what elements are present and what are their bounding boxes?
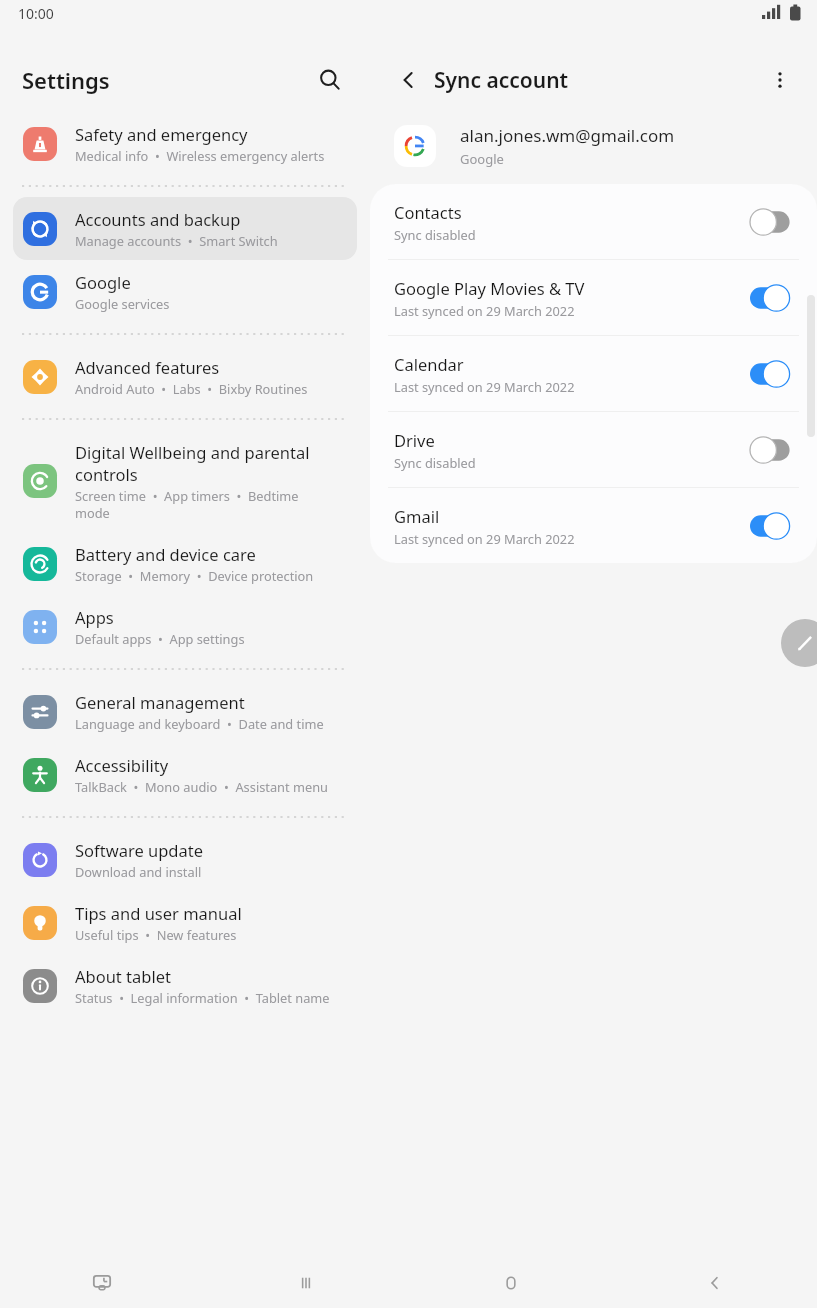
staticText: Status • Legal information • Tablet name	[75, 989, 356, 1006]
staticText: Last synced on 29 March 2022	[394, 378, 575, 395]
button[interactable]: More options	[761, 61, 799, 99]
button[interactable]: General management	[0, 680, 370, 743]
button[interactable]: Recents	[270, 1258, 342, 1308]
staticText: Language and keyboard • Date and time	[75, 715, 356, 732]
staticText: Software update	[75, 839, 203, 861]
staticText: Digital Wellbeing and parental controls	[75, 441, 337, 485]
staticText: About tablet	[75, 965, 171, 987]
staticText: Apps	[75, 606, 114, 628]
button[interactable]: alan.jones.wm@gmail.com	[394, 108, 817, 184]
button[interactable]: About tablet	[0, 954, 370, 1017]
button[interactable]: Gmail	[370, 488, 817, 563]
staticText: Android Auto • Labs • Bixby Routines	[75, 380, 356, 397]
staticText: Settings	[22, 65, 110, 95]
button[interactable]: Digital Wellbeing and parental controls	[0, 430, 370, 532]
button[interactable]: Accounts and backup	[13, 197, 357, 260]
staticText: Storage • Memory • Device protection	[75, 567, 356, 584]
button[interactable]: Tips and user manual	[0, 891, 370, 954]
staticText: Tips and user manual	[75, 902, 242, 924]
staticText: 10:00	[18, 4, 54, 23]
staticText: Google	[75, 271, 131, 293]
staticText: Useful tips • New features	[75, 926, 356, 943]
button[interactable]: Battery and device care	[0, 532, 370, 595]
button[interactable]: Calendar	[370, 336, 817, 411]
staticText: Manage accounts • Smart Switch	[75, 232, 343, 249]
staticText: Last synced on 29 March 2022	[394, 302, 575, 319]
button[interactable]: Back	[390, 61, 428, 99]
button[interactable]: Search	[310, 60, 350, 100]
staticText: alan.jones.wm@gmail.com	[460, 124, 675, 147]
button[interactable]: Apps	[0, 595, 370, 658]
staticText: Sync disabled	[394, 226, 476, 243]
staticText: Google	[460, 150, 504, 168]
staticText: General management	[75, 691, 245, 713]
button[interactable]: Accessibility	[0, 743, 370, 806]
staticText: Medical info • Wireless emergency alerts	[75, 147, 356, 164]
staticText: Screen time • App timers • Bedtime mode	[75, 487, 309, 521]
staticText: Gmail	[394, 505, 440, 527]
staticText: Calendar	[394, 353, 464, 375]
staticText: Google services	[75, 295, 356, 312]
button[interactable]: Software update	[0, 828, 370, 891]
button[interactable]: Google Play Movies & TV	[370, 260, 817, 335]
button[interactable]: Google	[0, 260, 370, 323]
staticText: Google Play Movies & TV	[394, 277, 585, 299]
staticText: Last synced on 29 March 2022	[394, 530, 575, 547]
staticText: Battery and device care	[75, 543, 256, 565]
button[interactable]: Back	[679, 1258, 751, 1308]
staticText: Safety and emergency	[75, 123, 248, 145]
staticText: Drive	[394, 429, 435, 451]
button[interactable]: Contacts	[370, 184, 817, 259]
staticText: Contacts	[394, 201, 462, 223]
staticText: Sync account	[434, 66, 569, 95]
staticText: Download and install	[75, 863, 356, 880]
staticText: TalkBack • Mono audio • Assistant menu	[75, 778, 356, 795]
staticText: Accounts and backup	[75, 208, 241, 230]
staticText: Advanced features	[75, 356, 220, 378]
button[interactable]: Home	[475, 1258, 547, 1308]
button[interactable]: Safety and emergency	[0, 112, 370, 175]
staticText: Default apps • App settings	[75, 630, 356, 647]
button[interactable]: Advanced features	[0, 345, 370, 408]
staticText: Sync disabled	[394, 454, 476, 471]
button[interactable]: Edit	[781, 619, 817, 667]
staticText: Accessibility	[75, 754, 169, 776]
button[interactable]: Keyboard	[66, 1258, 138, 1308]
button[interactable]: Drive	[370, 412, 817, 487]
